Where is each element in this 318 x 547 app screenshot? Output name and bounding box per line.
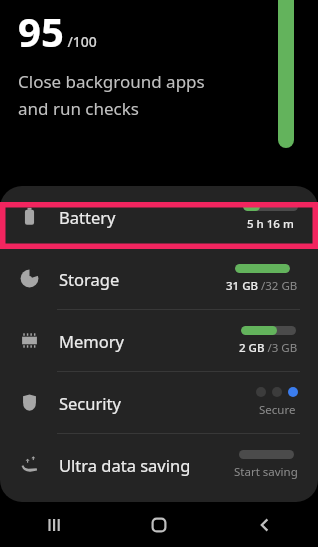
button[interactable]: Ultra data saving bbox=[0, 434, 318, 495]
button[interactable]: Recent apps bbox=[0, 502, 106, 547]
staticText: 5 h 16 m bbox=[247, 216, 294, 232]
button[interactable]: Storage bbox=[0, 248, 318, 309]
staticText: 31 GB /32 GB bbox=[226, 278, 298, 294]
staticText: Ultra data saving bbox=[59, 454, 191, 476]
staticText: 2 GB /3 GB bbox=[239, 340, 298, 356]
staticText: 95 /100 bbox=[18, 4, 97, 58]
staticText: Security bbox=[59, 392, 121, 414]
staticText: Close background apps bbox=[18, 70, 205, 93]
button[interactable]: Back bbox=[212, 502, 318, 547]
staticText: Battery bbox=[59, 206, 116, 228]
button[interactable]: Home bbox=[106, 502, 212, 547]
staticText: and run checks bbox=[18, 97, 140, 120]
button[interactable]: Battery highlighted bbox=[0, 202, 318, 249]
staticText: Storage bbox=[59, 268, 120, 290]
button[interactable]: Battery bbox=[0, 186, 318, 247]
staticText: Secure bbox=[259, 402, 296, 418]
staticText: Memory bbox=[59, 330, 124, 352]
button[interactable]: Memory bbox=[0, 310, 318, 371]
staticText: Start saving bbox=[234, 464, 298, 480]
button[interactable]: Security bbox=[0, 372, 318, 433]
